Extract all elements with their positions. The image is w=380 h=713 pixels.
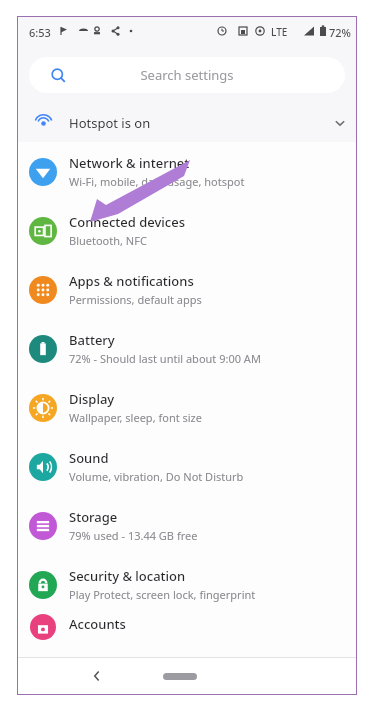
button[interactable]: Display [17,378,357,437]
button[interactable]: Back [79,657,115,695]
button[interactable]: Storage [17,496,357,555]
staticText: LTE [271,25,288,39]
staticText: Volume, vibration, Do Not Disturb [69,469,244,484]
staticText: Hotspot is on [69,114,151,132]
staticText: Accounts [69,615,126,633]
staticText: Apps & notifications [69,272,194,290]
staticText: 6:53 [29,25,51,40]
staticText: Sound [69,449,109,467]
button[interactable]: Search settings [29,57,345,93]
button[interactable]: Home [156,664,204,688]
staticText: 72% [329,25,351,40]
button[interactable]: Accounts [17,614,357,640]
staticText: Wi-Fi, mobile, data usage, hotspot [69,174,245,189]
button[interactable]: Network & internet [17,142,357,201]
staticText: Search settings [29,66,345,84]
staticText: Permissions, default apps [69,292,202,307]
button[interactable]: Hotspot is on [17,105,357,141]
button[interactable]: Sound [17,437,357,496]
staticText: Play Protect, screen lock, fingerprint [69,587,256,602]
staticText: Bluetooth, NFC [69,233,147,248]
staticText: Battery [69,331,115,349]
staticText: Display [69,390,115,408]
staticText: Security & location [69,567,186,585]
staticText: Connected devices [69,213,186,231]
staticText: Wallpaper, sleep, font size [69,410,202,425]
button[interactable]: Security & location [17,555,357,614]
button[interactable]: Connected devices [17,201,357,260]
button[interactable]: Apps & notifications [17,260,357,319]
staticText: 79% used - 13.44 GB free [69,528,198,543]
button[interactable]: Battery [17,319,357,378]
staticText: Network & internet [69,154,190,172]
staticText: Storage [69,508,118,526]
staticText: 72% - Should last until about 9:00 AM [69,351,261,366]
